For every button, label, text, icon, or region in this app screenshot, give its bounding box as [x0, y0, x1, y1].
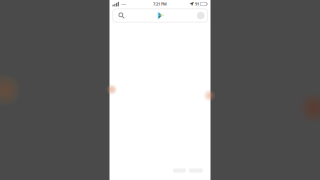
staticText: —	[121, 0, 126, 8]
staticText: 7:21 PM	[153, 1, 167, 7]
button[interactable]: Search Google Play	[113, 9, 208, 22]
staticText: 91	[195, 1, 199, 7]
